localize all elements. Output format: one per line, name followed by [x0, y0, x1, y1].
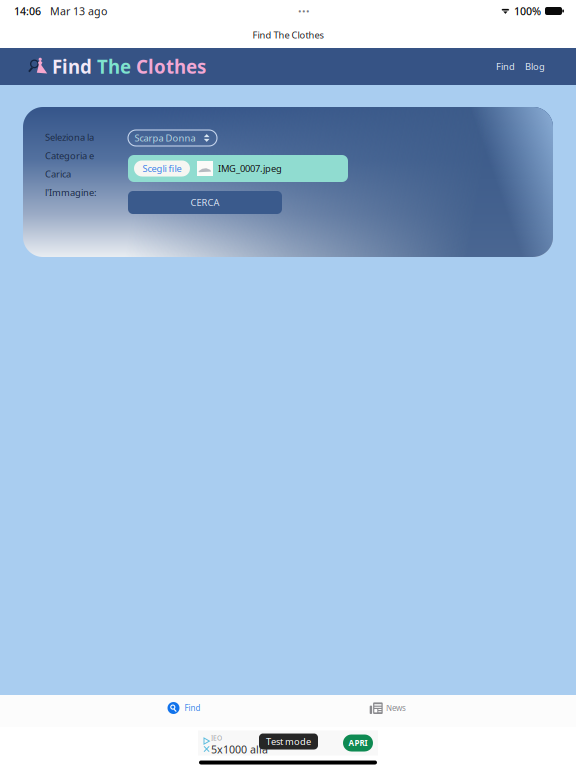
staticText: Find	[496, 60, 515, 73]
staticText: Carica	[45, 168, 71, 180]
staticText: Find	[184, 703, 200, 713]
button[interactable]: News	[369, 698, 405, 718]
staticText: Find	[52, 54, 92, 79]
staticText: 100%	[514, 4, 541, 18]
staticText: Mar 13 ago	[41, 4, 107, 18]
button[interactable]: Find	[491, 48, 520, 85]
staticText: Categoria e	[45, 149, 94, 162]
staticText: Find The Clothes	[252, 29, 323, 41]
staticText: Scegli file	[142, 162, 181, 175]
staticText: •••	[298, 5, 310, 17]
staticText: Test mode	[266, 735, 311, 748]
staticText: CERCA	[190, 196, 219, 209]
staticText: APRI	[348, 738, 367, 748]
staticText: Clothes	[131, 54, 206, 79]
staticText: 5x1000 alla	[211, 742, 268, 757]
staticText: 14:06	[14, 4, 41, 18]
button[interactable]: Scegli file	[134, 160, 190, 176]
staticText: Blog	[525, 60, 545, 73]
button[interactable]: Find	[167, 698, 201, 718]
staticText: The	[92, 54, 131, 79]
staticText: Scarpa Donna	[134, 132, 195, 144]
button[interactable]: Blog	[520, 48, 550, 85]
staticText: News	[386, 703, 406, 713]
staticText: Seleziona la	[45, 131, 94, 143]
staticText: IMG_0007.jpeg	[218, 162, 282, 175]
staticText: l'Immagine:	[45, 186, 97, 199]
staticText: IEO	[211, 733, 222, 742]
button[interactable]: CERCA	[128, 191, 282, 214]
button[interactable]: Scarpa Donna	[128, 130, 217, 146]
button[interactable]: APRI	[343, 734, 373, 751]
